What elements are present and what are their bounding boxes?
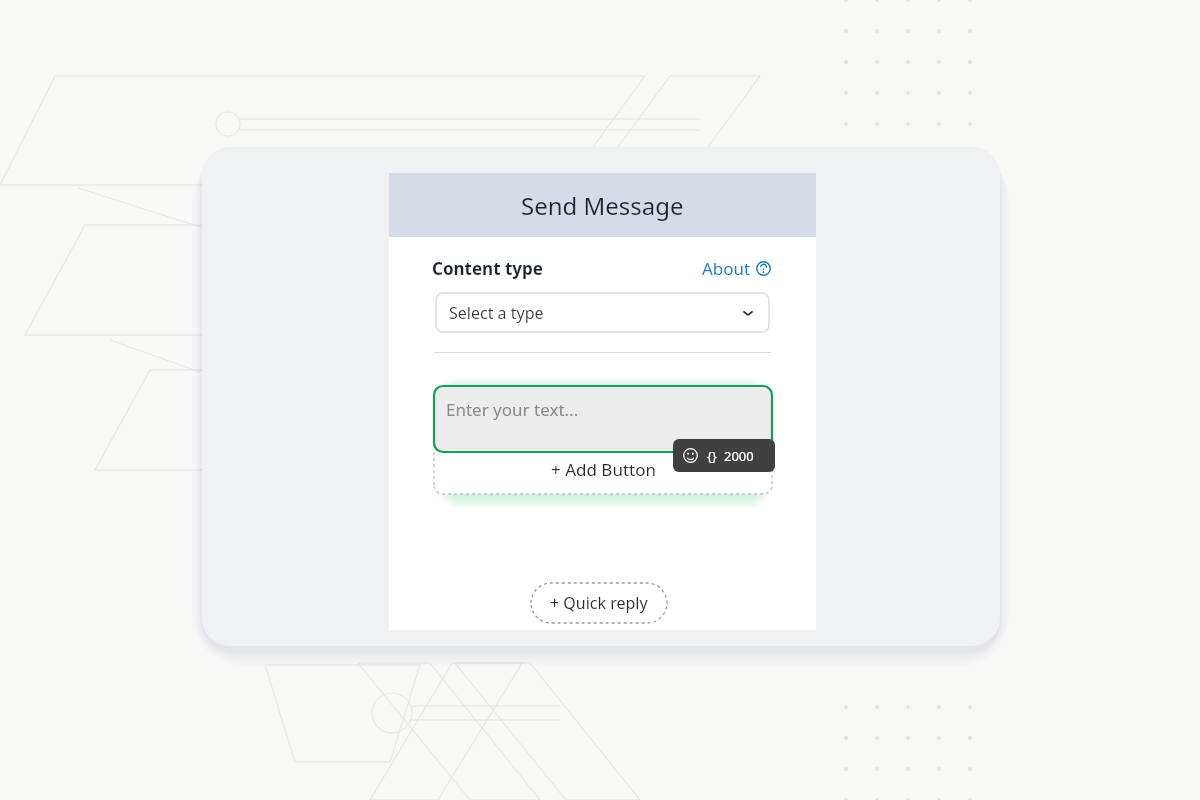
button[interactable]: About xyxy=(702,257,771,280)
staticText: 2000 xyxy=(724,447,754,465)
button[interactable]: Select a type xyxy=(436,293,769,332)
other: Help xyxy=(756,261,771,276)
button[interactable]: + Quick reply xyxy=(531,583,667,623)
staticText: About xyxy=(702,257,751,280)
staticText: + Quick reply xyxy=(550,592,648,614)
staticText: {} xyxy=(707,447,717,465)
staticText: Content type xyxy=(432,257,543,280)
button[interactable]: Enter your text... xyxy=(434,386,772,452)
staticText: Enter your text... xyxy=(446,398,579,421)
other: Insert emoji xyxy=(683,448,698,463)
staticText: + Add Button xyxy=(551,458,656,481)
button[interactable]: + Add Button xyxy=(434,444,772,494)
button[interactable]: Insert emoji xyxy=(673,439,775,472)
staticText: Send Message xyxy=(521,189,684,222)
staticText: Select a type xyxy=(449,302,544,324)
